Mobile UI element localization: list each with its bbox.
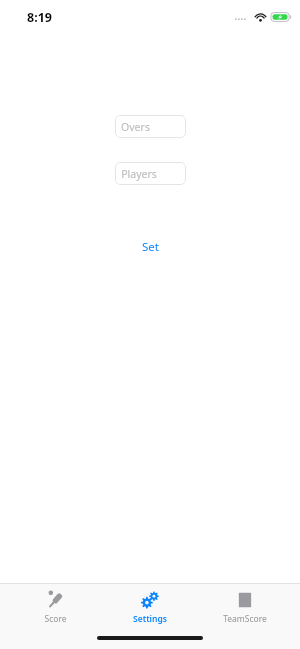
button[interactable]: TeamScore [205, 584, 285, 625]
other: Score [44, 589, 66, 611]
staticText: 8:19 [27, 9, 52, 26]
staticText: Settings [133, 613, 167, 625]
staticText: Overs [121, 120, 150, 134]
staticText: Players [121, 167, 157, 181]
button[interactable]: Settings [110, 584, 190, 625]
button[interactable]: Set [132, 236, 169, 258]
other: Settings [139, 589, 161, 611]
staticText: Score [44, 613, 67, 625]
button[interactable]: Overs [115, 115, 186, 138]
staticText: Set [142, 239, 159, 255]
staticText: TeamScore [223, 613, 267, 625]
button[interactable]: Score [15, 584, 95, 625]
other: TeamScore [234, 589, 256, 611]
button[interactable]: Players [115, 162, 186, 185]
